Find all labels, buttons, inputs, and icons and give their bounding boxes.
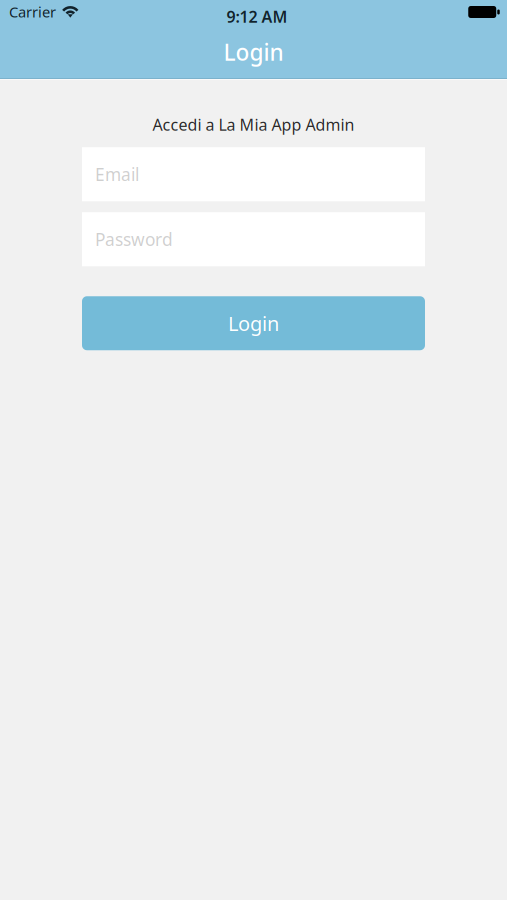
button[interactable]: Email bbox=[82, 147, 425, 201]
staticText: Login bbox=[223, 37, 283, 67]
staticText: Password bbox=[95, 228, 173, 251]
staticText: Email bbox=[95, 163, 139, 186]
staticText: 9:12 AM bbox=[226, 6, 287, 27]
staticText: Accedi a La Mia App Admin bbox=[152, 114, 354, 135]
button[interactable]: Password bbox=[82, 212, 425, 266]
staticText: Login bbox=[228, 310, 279, 337]
button[interactable]: Login bbox=[82, 296, 425, 350]
staticText: Carrier bbox=[9, 2, 56, 21]
